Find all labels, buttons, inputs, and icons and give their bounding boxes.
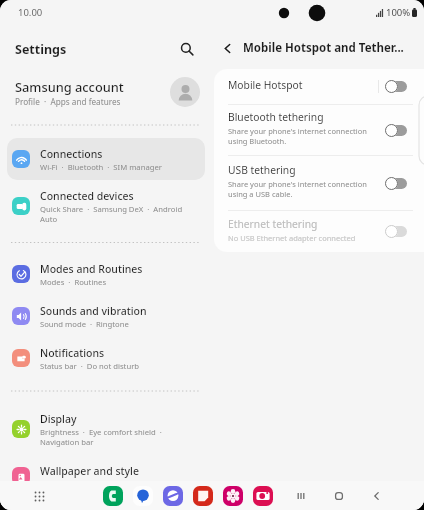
staticText: Notifications	[40, 346, 105, 360]
button[interactable]: Toggle	[385, 80, 407, 93]
button[interactable]: Connected devices	[7, 180, 205, 232]
button[interactable]: Toggle	[385, 177, 407, 190]
button[interactable]: Phone	[98, 481, 128, 510]
staticText: No USB Ethernet adapter connected	[228, 233, 356, 243]
staticText: Ethernet tethering	[228, 217, 318, 231]
staticText: 10.00	[18, 6, 43, 19]
button[interactable]: Samsung account	[0, 72, 212, 112]
staticText: Sound mode · Ringtone	[40, 319, 129, 329]
staticText: Modes · Routines	[40, 277, 107, 287]
staticText: Display	[40, 412, 77, 426]
staticText: Share your phone's internet connection u…	[228, 126, 379, 146]
button[interactable]: Toggle	[385, 124, 407, 137]
staticText: Mobile Hotspot and Tether...	[243, 40, 404, 56]
staticText: Connections	[40, 147, 103, 161]
button[interactable]: Display	[7, 403, 205, 455]
staticText: Status bar · Do not disturb	[40, 361, 140, 371]
button[interactable]: Notifications	[7, 337, 205, 379]
button[interactable]: Recents	[288, 483, 314, 509]
button[interactable]: Notes	[188, 481, 218, 510]
button[interactable]: Wallpaper and style	[7, 455, 205, 497]
button[interactable]: Ethernet tethering	[214, 211, 424, 252]
staticText: Sounds and vibration	[40, 304, 147, 318]
button[interactable]: All apps	[28, 485, 50, 507]
staticText: Brightness · Eye comfort shield · Naviga…	[40, 427, 199, 447]
button[interactable]: Back	[212, 33, 242, 63]
button[interactable]: Gallery	[218, 481, 248, 510]
staticText: Settings	[15, 41, 67, 58]
staticText: Mobile Hotspot	[228, 78, 303, 92]
button[interactable]: Modes and Routines	[7, 253, 205, 295]
staticText: Modes and Routines	[40, 262, 143, 276]
button[interactable]: USB tethering	[214, 156, 424, 210]
button[interactable]: Sounds and vibration	[7, 295, 205, 337]
button[interactable]: Bluetooth tethering	[214, 105, 424, 155]
staticText: Wallpaper and style	[40, 464, 139, 478]
staticText: Profile · Apps and features	[15, 96, 121, 107]
staticText: Connected devices	[40, 189, 134, 203]
button[interactable]: Mobile Hotspot	[214, 69, 424, 104]
staticText: Bluetooth tethering	[228, 110, 324, 124]
button[interactable]: Camera	[248, 481, 278, 510]
button[interactable]: Toggle	[385, 225, 407, 238]
button[interactable]: Messages	[128, 481, 158, 510]
staticText: Wallpapers · Color palette	[40, 479, 137, 489]
button[interactable]: Back	[364, 483, 390, 509]
button[interactable]: Internet	[158, 481, 188, 510]
staticText: 100%	[386, 6, 411, 19]
staticText: Wi-Fi · Bluetooth · SIM manager	[40, 162, 162, 172]
staticText: Quick Share · Samsung DeX · Android Auto	[40, 204, 199, 224]
staticText: USB tethering	[228, 163, 296, 177]
staticText: Share your phone's internet connection u…	[228, 179, 379, 199]
button[interactable]: Connections	[7, 138, 205, 180]
button[interactable]: Home	[326, 483, 352, 509]
button[interactable]: Search	[174, 36, 200, 62]
staticText: Samsung account	[15, 78, 124, 95]
